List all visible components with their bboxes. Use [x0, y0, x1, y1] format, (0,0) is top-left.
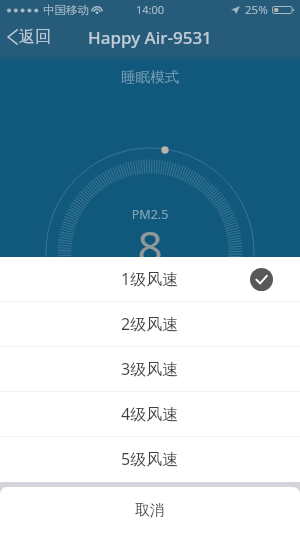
staticText: PM2.5 — [0, 206, 300, 223]
button[interactable]: 取消 — [0, 487, 300, 533]
staticText: 睡眠模式 — [0, 68, 300, 86]
button[interactable]: 3级风速 — [0, 347, 300, 391]
button[interactable]: 返回 — [7, 27, 51, 47]
staticText: 8 — [0, 216, 300, 276]
staticText: 返回 — [19, 27, 51, 47]
staticText: 4级风速 — [121, 403, 179, 425]
staticText: 25% — [245, 2, 268, 18]
staticText: Happy Air-9531 — [88, 26, 212, 49]
staticText: 5级风速 — [121, 448, 179, 470]
button[interactable]: 1级风速 — [0, 257, 300, 301]
staticText: 中国移动 — [43, 3, 89, 17]
other: Selected — [250, 268, 273, 291]
staticText: 3级风速 — [121, 358, 179, 380]
button[interactable]: 5级风速 — [0, 437, 300, 481]
staticText: 2级风速 — [121, 313, 179, 335]
staticText: 取消 — [135, 501, 165, 520]
button[interactable]: 4级风速 — [0, 392, 300, 436]
staticText: 1级风速 — [121, 268, 179, 290]
button[interactable]: 2级风速 — [0, 302, 300, 346]
staticText: 14:00 — [136, 2, 165, 17]
